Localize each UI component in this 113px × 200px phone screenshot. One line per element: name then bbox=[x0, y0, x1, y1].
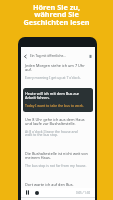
staticText: 0:05 / 1:30 bbox=[76, 191, 91, 195]
button[interactable]: Heute will ich mit dem Bus zur Arbeit fa… bbox=[23, 88, 93, 112]
staticText: Today I want to take the bus to work. bbox=[25, 103, 84, 108]
staticText: Heute will ich mit dem Bus zur Arbeit fa… bbox=[25, 91, 80, 100]
staticText: The bus stop is not far from my house. bbox=[25, 163, 87, 168]
staticText: At 8 o'clock I leave the house and walk … bbox=[25, 129, 78, 137]
button[interactable]: Bookmark bbox=[88, 54, 93, 59]
staticText: Jeden Morgen stehe ich um 7 Uhr auf. bbox=[25, 63, 85, 72]
staticText: Hören Sie zu, während Sie Geschichten le… bbox=[0, 2, 113, 27]
staticText: Ein Tag mit öffentliche… bbox=[30, 54, 66, 58]
button[interactable]: Pause bbox=[24, 189, 31, 196]
staticText: Um 8 Uhr gehe ich aus dem Haus und laufe… bbox=[25, 117, 85, 126]
other: Back bbox=[23, 54, 28, 59]
staticText: Dort warte ich auf den Bus. bbox=[25, 182, 74, 187]
button[interactable]: Back bbox=[21, 52, 95, 60]
staticText: Every morning I get up at 7 o'clock. bbox=[25, 75, 81, 80]
staticText: Die Bushaltestelle ist nicht weit von me… bbox=[25, 151, 88, 160]
button[interactable]: Record bbox=[33, 189, 40, 196]
